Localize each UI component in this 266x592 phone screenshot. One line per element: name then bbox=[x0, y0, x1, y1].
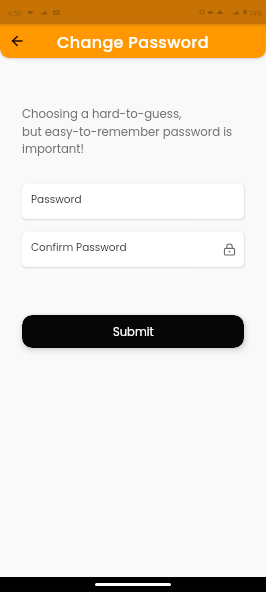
button[interactable]: Confirm Password bbox=[22, 232, 244, 267]
staticText: Submit bbox=[113, 324, 154, 340]
staticText: 4:50 bbox=[7, 8, 22, 18]
button[interactable]: Password bbox=[22, 184, 244, 219]
staticText: Choosing a hard-to-guess, but easy-to-re… bbox=[22, 106, 233, 157]
button[interactable]: Back bbox=[5, 29, 29, 53]
staticText: Password bbox=[31, 192, 82, 207]
button[interactable]: Submit bbox=[22, 315, 244, 348]
staticText: Change Password bbox=[57, 31, 209, 53]
staticText: Confirm Password bbox=[31, 240, 127, 255]
staticText: 74% bbox=[249, 9, 262, 18]
